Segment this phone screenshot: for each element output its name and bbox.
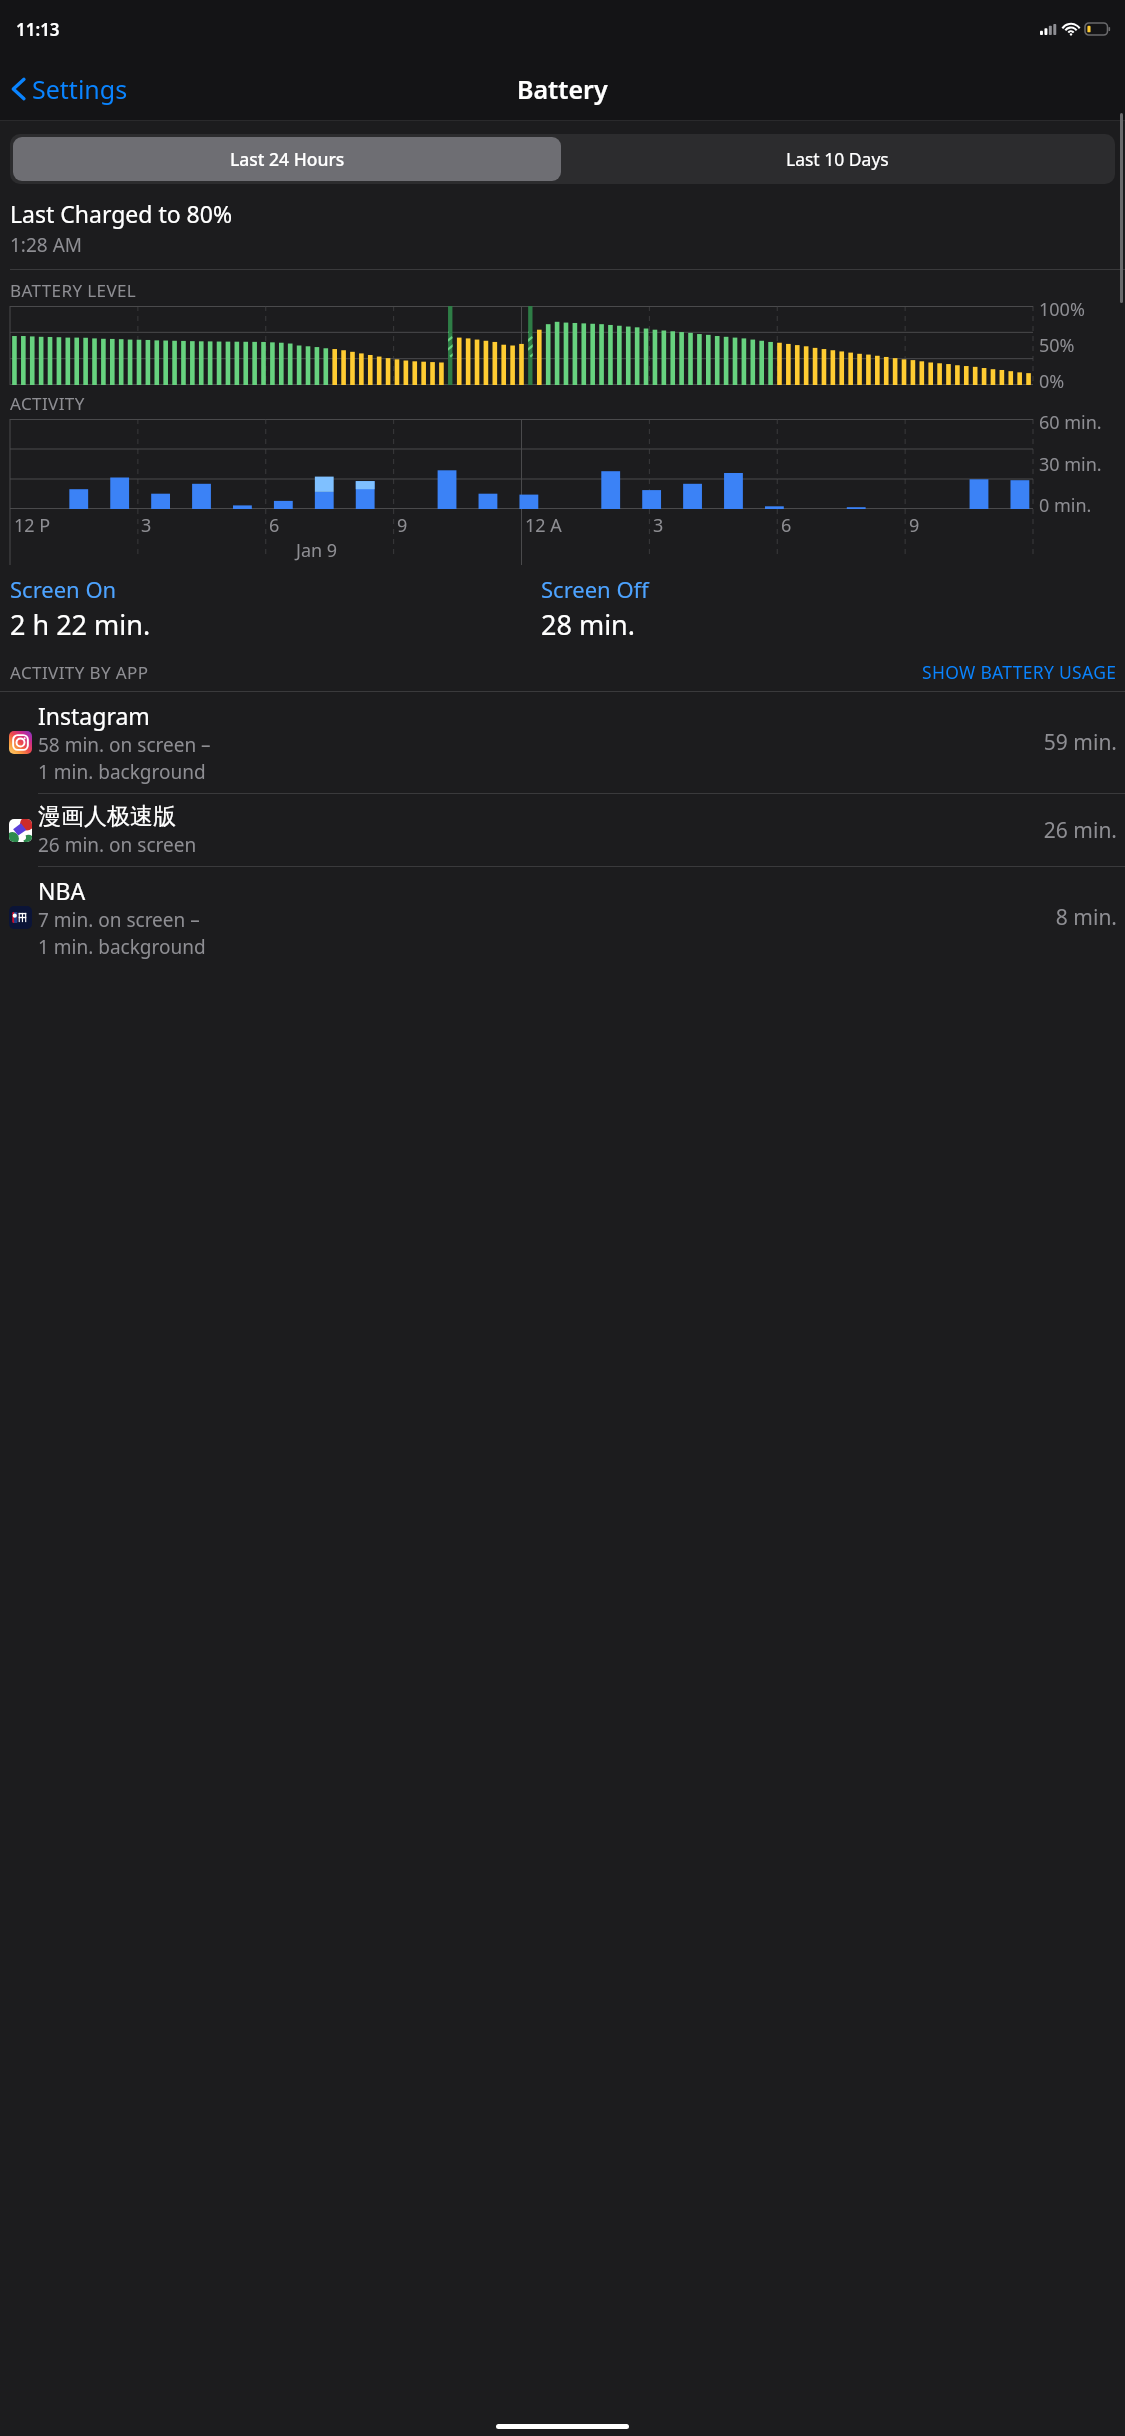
staticText: Instagram [38,700,150,731]
staticText: 7 min. on screen – [38,907,200,933]
staticText: 12 A [525,513,562,538]
button[interactable]: NBA [0,867,1125,968]
button[interactable]: 漫画人极速版 [0,794,1125,866]
staticText: 26 min. on screen [38,832,197,858]
staticText: ACTIVITY BY APP [10,661,149,684]
staticText: Last 24 Hours [230,147,345,171]
staticText: Screen On [10,574,117,604]
staticText: 漫画人极速版 [38,802,176,831]
staticText: Last Charged to 80% [10,198,233,229]
button[interactable]: Last 10 Days [562,136,1113,182]
staticText: 3 [141,513,152,538]
staticText: NBA [38,875,86,906]
button[interactable]: Instagram [0,692,1125,793]
staticText: Battery [517,72,608,106]
staticText: 60 min. [1039,410,1102,435]
staticText: 0 min. [1039,493,1092,518]
staticText: Last 10 Days [786,147,889,171]
staticText: 26 min. [1043,816,1117,845]
staticText: 12 P [14,513,51,538]
button[interactable]: Last 24 Hours [13,137,561,181]
staticText: 9 [909,513,920,538]
staticText: Jan 9 [296,538,338,563]
staticText: 30 min. [1039,452,1102,477]
staticText: SHOW BATTERY USAGE [922,660,1117,684]
staticText: 1 min. background [38,759,206,785]
staticText: 100% [1039,297,1085,322]
staticText: 28 min. [541,606,636,643]
staticText: 6 [269,513,280,538]
staticText: 3 [653,513,664,538]
button[interactable]: SHOW BATTERY USAGE [922,660,1117,684]
staticText: 6 [781,513,792,538]
staticText: ACTIVITY [10,392,85,415]
staticText: Settings [32,72,128,106]
staticText: 50% [1039,333,1075,358]
staticText: BATTERY LEVEL [10,279,137,302]
staticText: Screen Off [541,574,649,604]
staticText: 1 min. background [38,934,206,960]
staticText: 59 min. [1043,728,1117,757]
staticText: 58 min. on screen – [38,732,211,758]
staticText: 0% [1039,369,1065,394]
staticText: 8 min. [1055,903,1117,932]
staticText: 11:13 [16,18,60,41]
staticText: 2 h 22 min. [10,606,151,643]
staticText: 9 [397,513,408,538]
staticText: 1:28 AM [10,232,83,258]
button[interactable]: Settings [0,66,138,112]
